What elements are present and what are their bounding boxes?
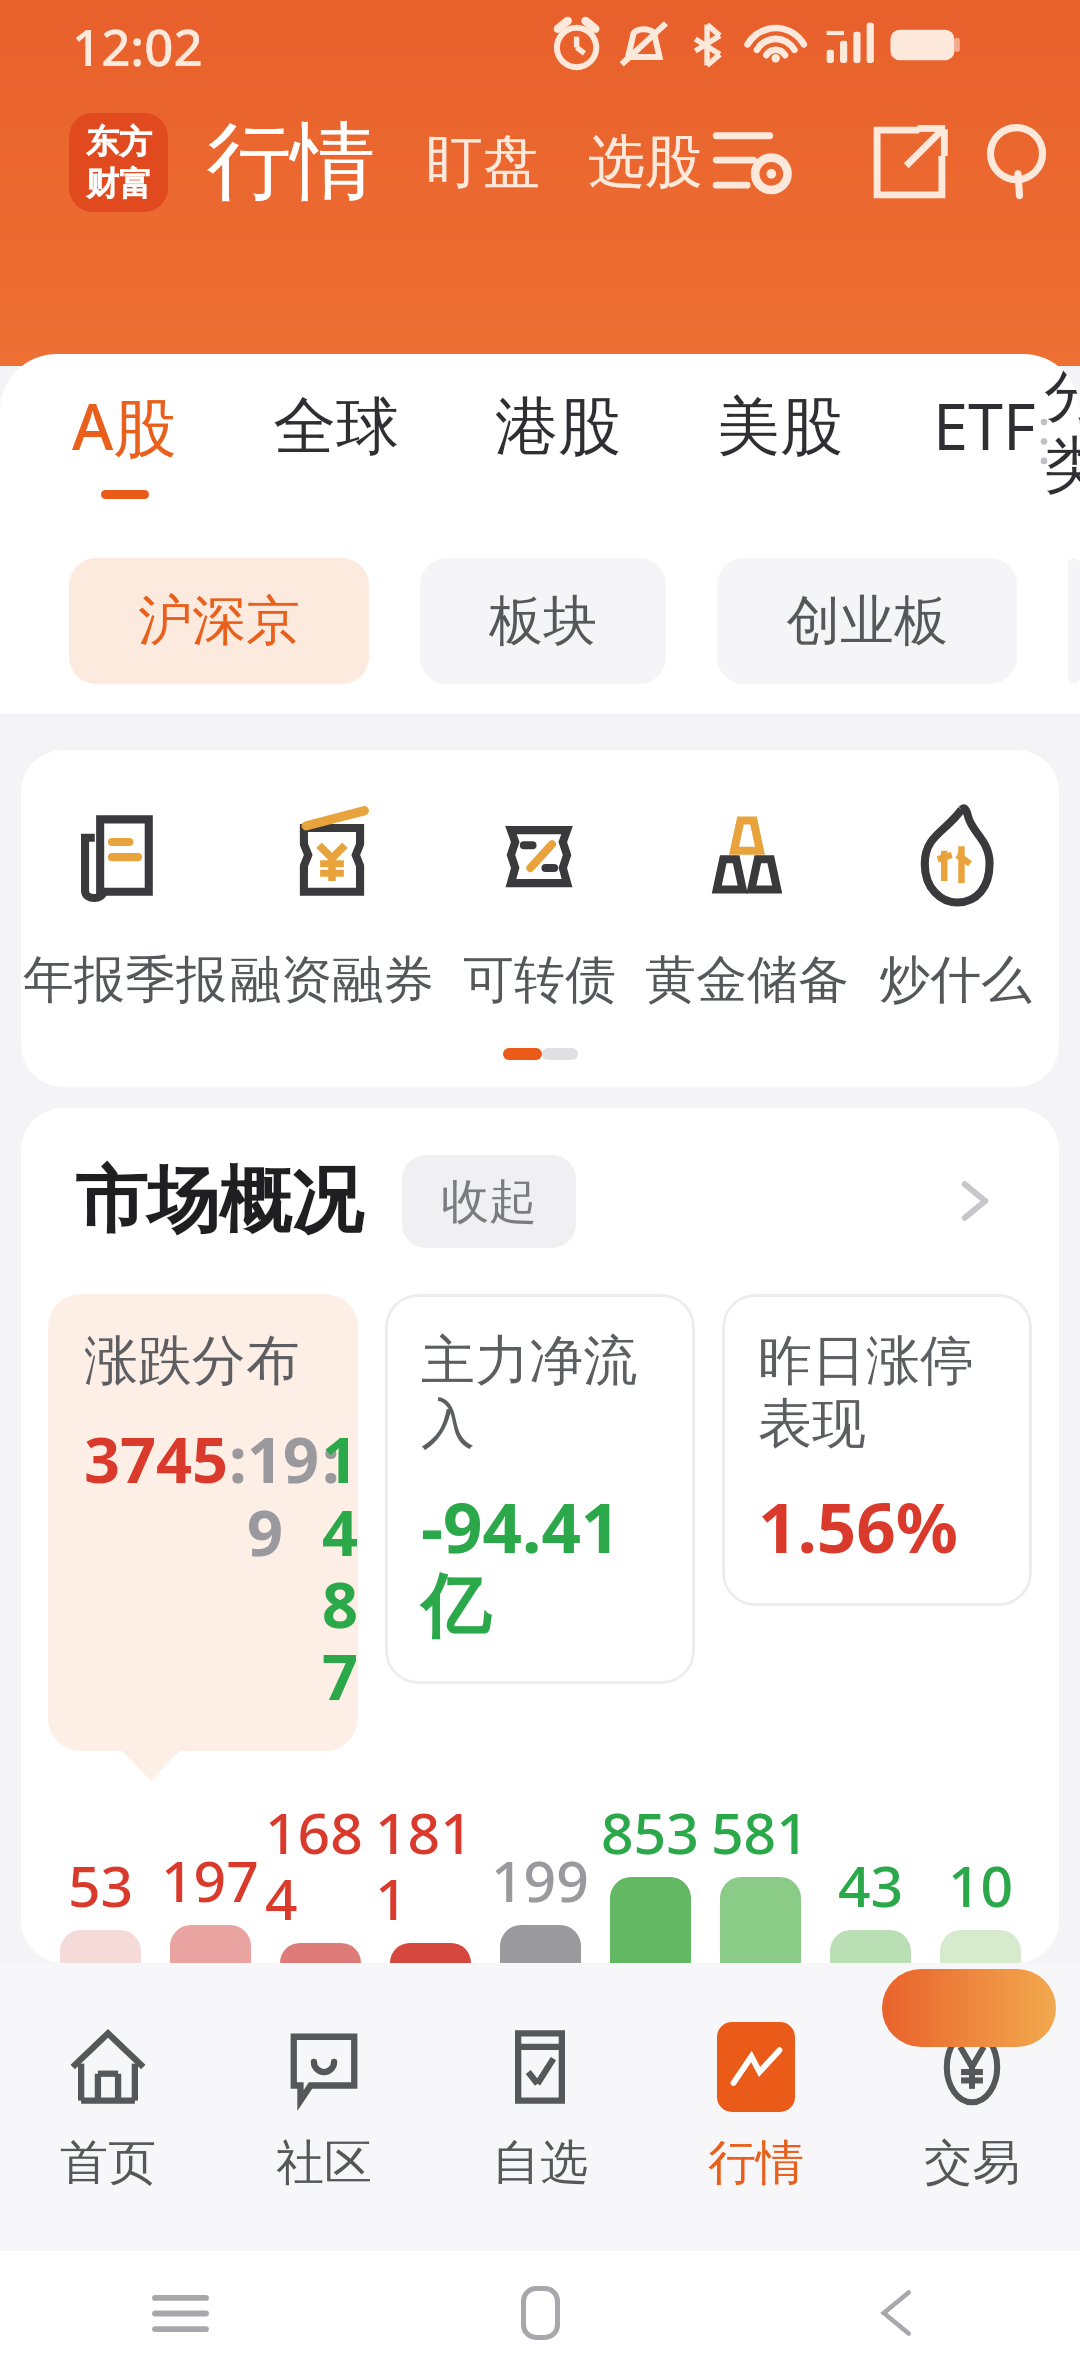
button[interactable]: 43 — [815, 1793, 925, 1963]
button[interactable]: ETF — [933, 383, 1036, 499]
button[interactable]: 581 — [705, 1793, 815, 1963]
staticText: 53 — [68, 1846, 134, 1924]
button[interactable]: 197 — [155, 1793, 265, 1963]
button[interactable]: 美股 — [717, 387, 843, 496]
button[interactable]: 可转债 — [435, 795, 643, 1012]
staticText: 市场概况 — [75, 1156, 363, 1247]
button[interactable]: 分享 — [858, 111, 960, 213]
staticText: 1.56% — [758, 1479, 959, 1573]
staticText: 收起 — [441, 1172, 537, 1232]
button[interactable]: 沪深京 — [69, 558, 369, 684]
staticText: 社区 — [276, 2133, 372, 2193]
staticText: 交易 — [924, 2133, 1020, 2193]
staticText: 行情 — [708, 2133, 804, 2193]
button[interactable]: 搜索 — [1014, 111, 1020, 213]
button[interactable]: 首页 — [0, 1963, 216, 2251]
staticText: 沪深京 — [138, 587, 300, 655]
staticText: 43 — [838, 1846, 904, 1924]
staticText: 黄金储备 — [645, 948, 849, 1012]
staticText: 昨日涨停表现 — [758, 1327, 996, 1458]
button[interactable]: 1811 — [375, 1793, 485, 1963]
button[interactable]: 昨日涨停表现 — [722, 1294, 1032, 1606]
staticText: 12:02 — [72, 11, 203, 80]
staticText: 可转债 — [463, 948, 616, 1012]
button[interactable]: 社区 — [216, 1963, 432, 2251]
button[interactable]: 盯盘 — [426, 126, 540, 198]
button[interactable]: 主力净流入 — [385, 1294, 695, 1684]
staticText: 创业板 — [786, 587, 948, 655]
button[interactable]: 炒什么 — [851, 795, 1059, 1012]
button[interactable]: 1684 — [265, 1793, 375, 1963]
staticText: 首页 — [60, 2133, 156, 2193]
button[interactable]: 全球 — [273, 387, 399, 496]
staticText: 融资融券 — [230, 948, 434, 1012]
button[interactable]: 主屏幕 — [489, 2262, 591, 2364]
button[interactable]: 创业板 — [717, 558, 1017, 684]
button[interactable]: 选股 — [588, 126, 702, 198]
staticText: 美股 — [717, 387, 843, 466]
staticText: 板块 — [489, 587, 597, 655]
staticText: 1811 — [375, 1793, 485, 1937]
staticText: 199 — [491, 1841, 589, 1919]
staticText: 行情 — [207, 109, 375, 215]
staticText: 主力净流入 — [421, 1327, 659, 1458]
staticText: 3745 — [84, 1416, 229, 1502]
button[interactable]: 涨跌分布 — [48, 1294, 358, 1751]
button[interactable]: 自选 — [432, 1963, 648, 2251]
button[interactable]: 行情 — [648, 1963, 864, 2251]
staticText: A股 — [72, 383, 177, 469]
button[interactable]: 港股 — [495, 387, 621, 496]
button[interactable]: 黄金储备 — [643, 795, 851, 1012]
button[interactable]: 最近任务 — [129, 2262, 231, 2364]
button[interactable]: 199 — [485, 1793, 595, 1963]
button[interactable]: 市场概况 — [21, 1108, 1059, 1294]
button[interactable]: 板块 — [420, 558, 666, 684]
button[interactable]: 年报季报 — [21, 795, 228, 1012]
staticText: ETF — [933, 383, 1036, 469]
staticText: 炒什么 — [879, 948, 1032, 1012]
staticText: 1684 — [265, 1793, 375, 1937]
staticText: 199 — [247, 1416, 322, 1574]
button[interactable]: 返回 — [849, 2262, 951, 2364]
button[interactable]: A股 — [72, 383, 177, 499]
staticText: 自选 — [492, 2133, 588, 2193]
staticText: 10 — [948, 1846, 1014, 1924]
staticText: 全球 — [273, 387, 399, 466]
staticText: 东方 — [86, 121, 152, 163]
staticText: 港股 — [495, 387, 621, 466]
staticText: 年报季报 — [23, 948, 227, 1012]
button[interactable]: 交易 — [864, 1963, 1080, 2251]
staticText: 197 — [161, 1841, 259, 1919]
button[interactable]: 融资融券 — [228, 795, 435, 1012]
staticText: 853 — [601, 1793, 699, 1871]
button[interactable]: 设置列表 — [702, 111, 804, 213]
button[interactable]: 53 — [45, 1793, 155, 1963]
staticText: 涨跌分布 — [84, 1327, 300, 1395]
staticText: 581 — [711, 1793, 809, 1871]
button[interactable]: 10 — [925, 1793, 1035, 1963]
staticText: : — [229, 1416, 247, 1502]
staticText: -94.41亿 — [421, 1479, 659, 1651]
staticText: 财富 — [86, 163, 152, 205]
button[interactable]: 收起 — [402, 1155, 576, 1248]
button[interactable]: 853 — [595, 1793, 705, 1963]
